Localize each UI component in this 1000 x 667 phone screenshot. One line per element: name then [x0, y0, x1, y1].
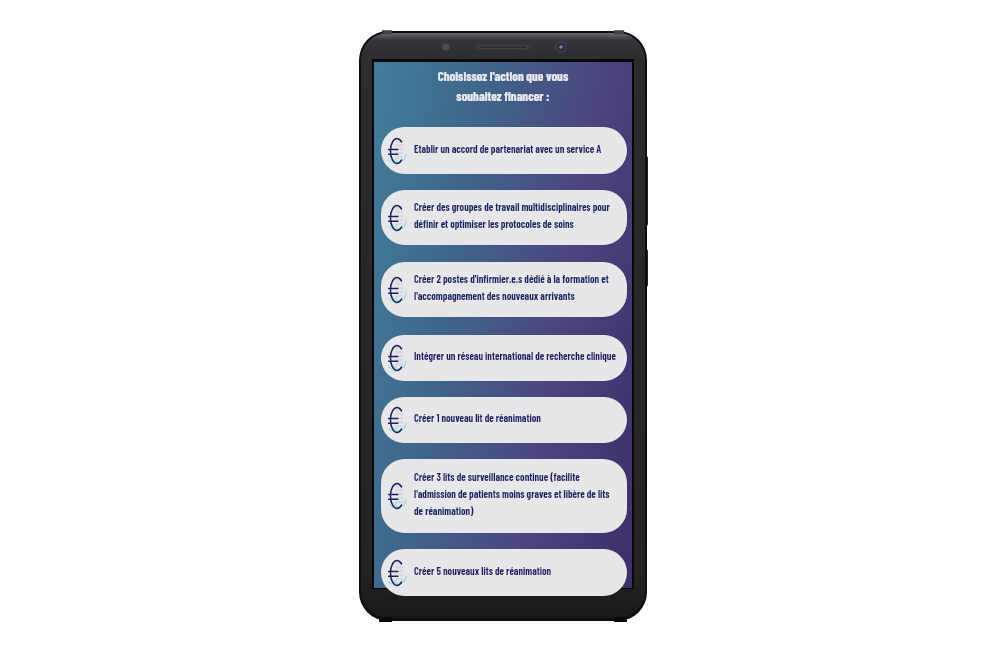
button[interactable]: Intégrer un réseau international de rech…: [381, 335, 627, 381]
staticText: Etablir un accord de partenariat avec un…: [414, 143, 602, 155]
staticText: Créer des groupes de travail multidiscip…: [414, 201, 610, 230]
staticText: Créer 5 nouveaux lits de réanimation: [414, 565, 552, 577]
button[interactable]: Créer 2 postes d'infirmier.e.s dédié à l…: [381, 262, 627, 317]
button[interactable]: Etablir un accord de partenariat avec un…: [381, 127, 627, 174]
button[interactable]: Créer 5 nouveaux lits de réanimation: [381, 549, 627, 596]
button[interactable]: Créer 3 lits de surveillance continue (f…: [381, 459, 627, 533]
button[interactable]: Créer 1 nouveau lit de réanimation: [381, 397, 627, 443]
staticText: Créer 2 postes d'infirmier.e.s dédié à l…: [414, 273, 609, 302]
staticText: Choisissez l'action que vous souhaitez f…: [374, 68, 632, 103]
staticText: Intégrer un réseau international de rech…: [414, 350, 616, 362]
button[interactable]: Créer des groupes de travail multidiscip…: [381, 190, 627, 245]
staticText: Créer 1 nouveau lit de réanimation: [414, 412, 541, 424]
staticText: Créer 3 lits de surveillance continue (f…: [414, 471, 610, 517]
